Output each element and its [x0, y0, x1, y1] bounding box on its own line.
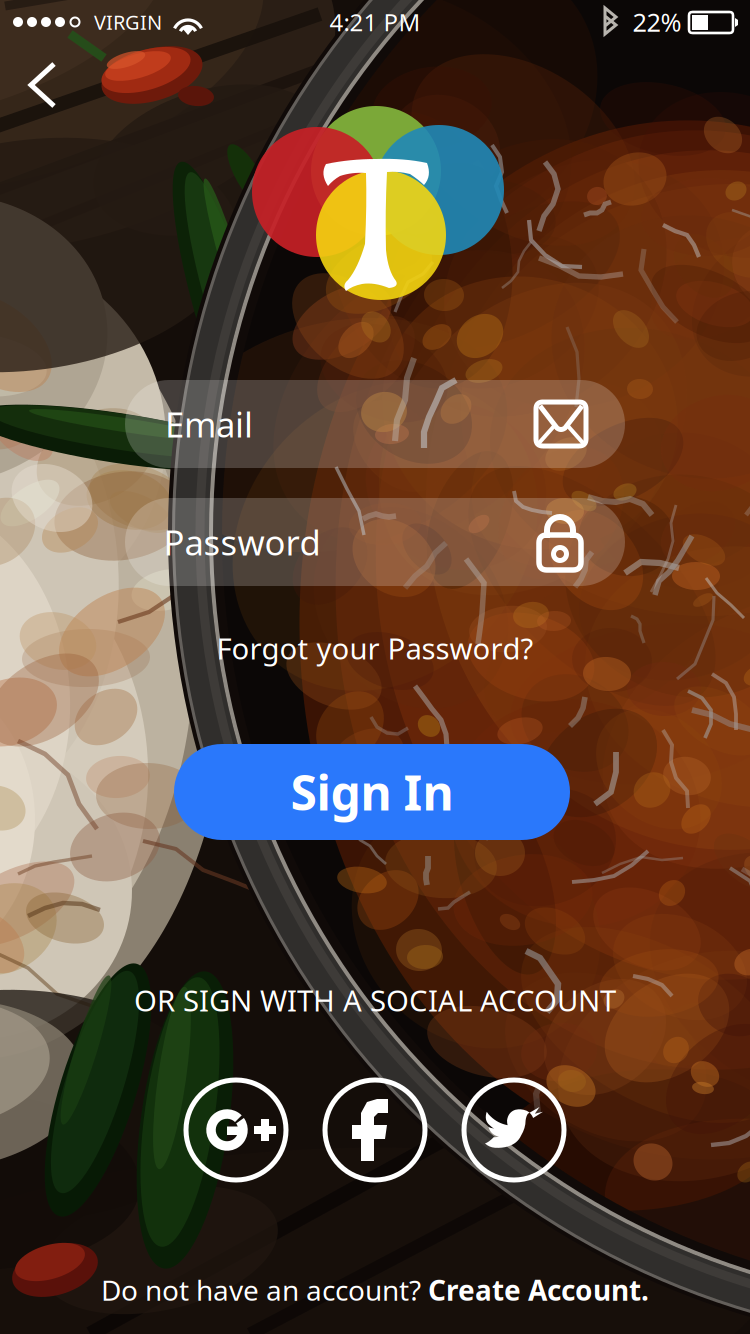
staticText: Sign In — [290, 760, 453, 824]
staticText: 4:21 PM — [329, 6, 420, 38]
staticText: VIRGIN — [94, 9, 162, 35]
button[interactable]: Sign in with Google — [0, 0, 750, 1334]
staticText: Forgot your Password? — [216, 628, 533, 667]
staticText: Do not have an account? — [101, 1271, 428, 1309]
button[interactable]: Email — [0, 0, 750, 1334]
staticText: OR SIGN WITH A SOCIAL ACCOUNT — [134, 980, 616, 1019]
staticText: Password — [163, 519, 320, 565]
staticText: Create Account. — [428, 1271, 649, 1309]
button[interactable]: Forgot your Password? — [0, 0, 750, 1334]
button[interactable]: Password — [0, 0, 750, 1334]
staticText: 22% — [632, 5, 681, 39]
button[interactable]: Sign In — [0, 0, 750, 1334]
button[interactable]: Sign in with Facebook — [0, 0, 750, 1334]
staticText: Email — [165, 401, 253, 447]
button[interactable]: Sign in with Twitter — [0, 0, 750, 1334]
button[interactable]: Back — [0, 0, 750, 1334]
